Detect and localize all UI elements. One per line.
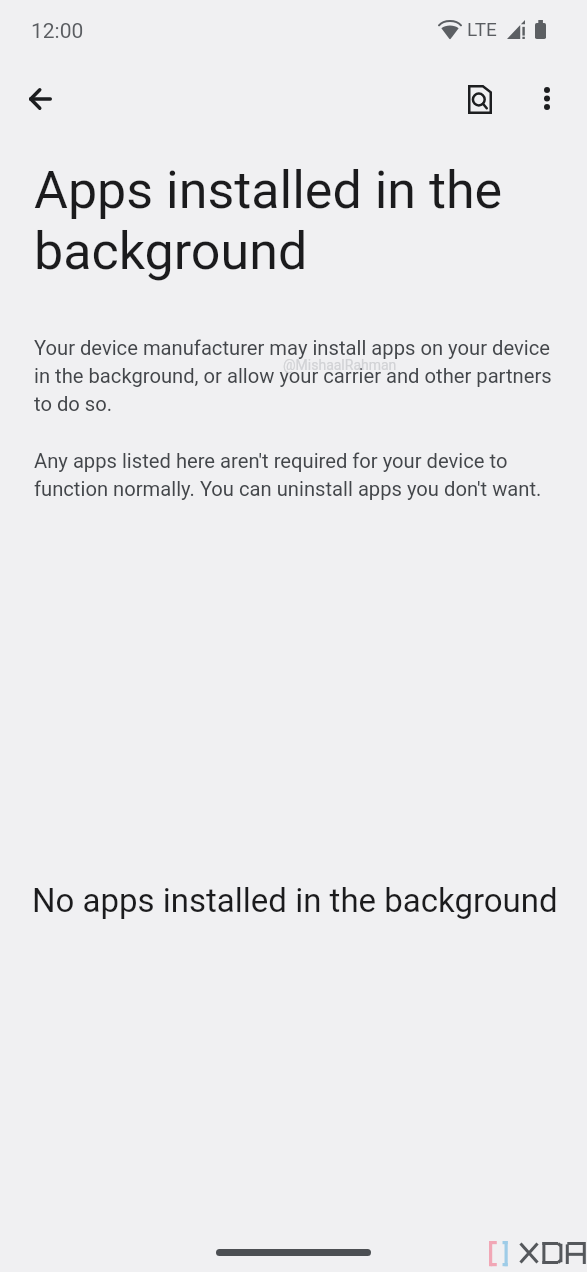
button[interactable]: Search in page bbox=[455, 74, 505, 124]
button[interactable]: Navigate up bbox=[16, 75, 64, 123]
staticText: Any apps listed here aren't required for… bbox=[34, 446, 564, 502]
staticText: No apps installed in the background bbox=[32, 881, 558, 920]
staticText: LTE bbox=[467, 18, 497, 40]
staticText: 12:00 bbox=[31, 19, 84, 44]
staticText: Apps installed in the background bbox=[34, 160, 534, 282]
staticText: @MishaalRahman bbox=[283, 357, 397, 373]
staticText: Your device manufacturer may install app… bbox=[34, 333, 564, 417]
button[interactable]: More options bbox=[523, 74, 571, 122]
